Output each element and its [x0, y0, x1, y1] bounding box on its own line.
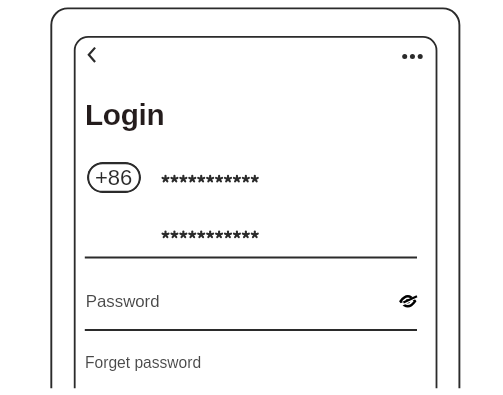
button[interactable]: Show password: [393, 288, 421, 315]
button[interactable]: More options: [394, 45, 428, 68]
button[interactable]: Password: [85, 281, 385, 330]
button[interactable]: Verification code: [85, 216, 417, 258]
button[interactable]: [84, 348, 208, 376]
button[interactable]: Country code +86: [87, 162, 141, 193]
button[interactable]: Back: [78, 43, 102, 67]
button[interactable]: Phone number: [150, 160, 416, 196]
